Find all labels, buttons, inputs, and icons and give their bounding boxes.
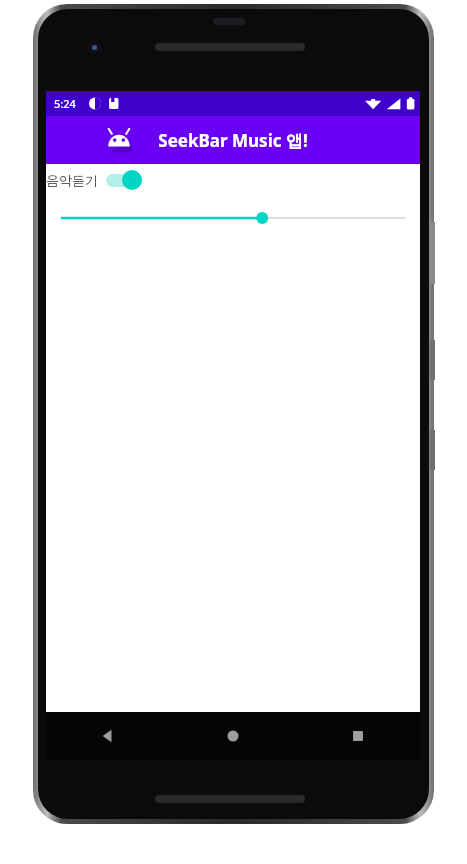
button[interactable]: 음악듣기 <box>46 164 420 196</box>
button[interactable]: Back <box>46 712 170 760</box>
staticText: 음악듣기 <box>46 172 98 188</box>
staticText: SeekBar Music 앱! <box>158 129 308 152</box>
staticText: 5:24 <box>54 96 76 111</box>
button[interactable]: Home <box>170 712 295 760</box>
button[interactable]: Recent apps <box>295 712 420 760</box>
button[interactable]: Music position slider <box>46 207 420 229</box>
